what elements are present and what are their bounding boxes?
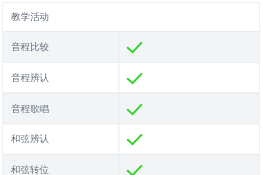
button[interactable]: 和弦辨认 已完成 — [118, 124, 150, 154]
button[interactable]: 和弦辨认 — [2, 124, 260, 154]
staticText: 音程辨认 — [11, 72, 49, 84]
staticText: 和弦辨认 — [11, 133, 49, 145]
button[interactable]: 音程比较 已完成 — [118, 32, 150, 62]
staticText: 和弦转位 — [11, 164, 49, 175]
button[interactable]: 和弦转位 已完成 — [118, 155, 150, 175]
button[interactable]: 和弦转位 — [2, 155, 260, 175]
button[interactable]: 音程歌唱 — [2, 94, 260, 124]
button[interactable]: 音程辨认 已完成 — [118, 63, 150, 93]
button[interactable]: 音程辨认 — [2, 63, 260, 93]
staticText: 音程比较 — [11, 41, 49, 53]
staticText: 音程歌唱 — [11, 103, 49, 115]
button[interactable]: 音程歌唱 已完成 — [118, 94, 150, 124]
staticText: 教学活动 — [11, 11, 49, 23]
button[interactable]: 教学活动 — [2, 2, 260, 31]
button[interactable]: 音程比较 — [2, 32, 260, 62]
